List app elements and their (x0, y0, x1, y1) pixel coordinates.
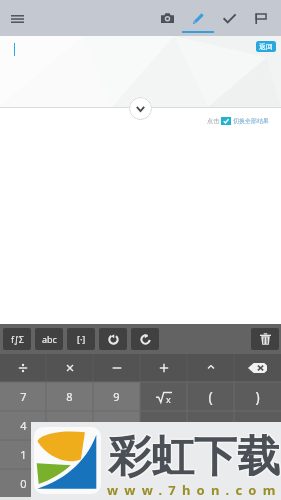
staticText: 彩虹下载 (107, 431, 279, 485)
staticText: 1/x (155, 447, 172, 462)
button[interactable] (93, 354, 140, 382)
button[interactable]: f∫Σ (3, 328, 31, 350)
staticText: abc (42, 333, 57, 345)
staticText: 0 (20, 476, 27, 491)
button[interactable]: abc (35, 328, 63, 350)
staticText: 1/2x (152, 418, 175, 433)
staticText: = (113, 476, 120, 491)
staticText: ] (256, 418, 260, 433)
button[interactable]: . (46, 469, 93, 497)
staticText: ( (208, 387, 213, 406)
button[interactable]: Done (213, 0, 245, 36)
button[interactable]: [·] (67, 328, 95, 350)
staticText: 5 (66, 418, 73, 433)
staticText: . (68, 476, 71, 491)
staticText: 彩虹下载 (109, 429, 281, 483)
button[interactable]: Camera (151, 0, 183, 36)
staticText: x (166, 393, 171, 405)
button[interactable]: 2 (46, 440, 93, 469)
button[interactable]: Toggle (221, 117, 231, 125)
staticText: x² (206, 447, 216, 462)
staticText: 彩虹下载 (108, 430, 280, 484)
button[interactable]: 1 (0, 440, 46, 469)
button[interactable]: Menu (3, 4, 31, 32)
button[interactable]: 9 (93, 382, 140, 411)
staticText: 3 (113, 447, 120, 462)
button[interactable] (187, 354, 234, 382)
button[interactable]: 4 (0, 411, 46, 440)
staticText: x³ (253, 447, 263, 462)
button[interactable]: 1/2x (140, 411, 187, 440)
staticText: ) (255, 387, 260, 406)
staticText: 2 (66, 447, 73, 462)
button[interactable]: Collapse (129, 97, 152, 120)
staticText: 返回 (259, 42, 273, 51)
button[interactable]: 5 (46, 411, 93, 440)
button[interactable]: ( (187, 382, 234, 411)
button[interactable]: 7 (0, 382, 46, 411)
button[interactable]: ] (234, 411, 281, 440)
button[interactable]: Undo (99, 328, 127, 350)
button[interactable]: x³ (234, 440, 281, 469)
button[interactable]: 返回 (256, 41, 276, 52)
staticText: 彩虹下载 (109, 431, 281, 485)
button[interactable]: x (140, 382, 187, 411)
staticText: www.7hon.com (107, 481, 281, 499)
staticText: [ (209, 418, 213, 433)
button[interactable] (140, 354, 187, 382)
button[interactable]: Flag (245, 0, 277, 36)
button[interactable]: = (93, 469, 140, 497)
staticText: 彩虹下载 (108, 431, 280, 485)
staticText: [·] (77, 333, 86, 345)
button[interactable]: 3 (93, 440, 140, 469)
staticText: 彩虹下载 (108, 429, 280, 483)
button[interactable]: 8 (46, 382, 93, 411)
staticText: 彩虹下载 (107, 430, 279, 484)
staticText: 彩虹下载 (107, 429, 279, 483)
staticText: 1 (20, 447, 27, 462)
button[interactable]: [ (187, 411, 234, 440)
other: Backspace (248, 363, 267, 373)
button[interactable]: 1/x (140, 440, 187, 469)
staticText: 6 (113, 418, 120, 433)
button[interactable]: 6 (93, 411, 140, 440)
staticText: 9 (113, 389, 120, 404)
staticText: 彩虹下载 (109, 430, 281, 484)
staticText: f∫Σ (11, 333, 24, 345)
button[interactable]: ) (234, 382, 281, 411)
button[interactable]: π (140, 469, 187, 497)
button[interactable]: Redo (131, 328, 159, 350)
button[interactable]: 0 (0, 469, 46, 497)
staticText: 4 (20, 418, 27, 433)
staticText: % (253, 476, 263, 491)
button[interactable]: Delete (251, 328, 279, 350)
button[interactable]: Backspace (234, 354, 281, 382)
button[interactable]: e (187, 469, 234, 497)
staticText: 切换全部结果 (233, 117, 269, 125)
staticText: 8 (66, 389, 73, 404)
button[interactable]: Draw (182, 0, 214, 36)
button[interactable]: % (234, 469, 281, 497)
staticText: 7 (20, 389, 27, 404)
button[interactable]: x² (187, 440, 234, 469)
staticText: e (207, 476, 214, 491)
button[interactable] (46, 354, 93, 382)
staticText: 点击 (207, 117, 219, 125)
button[interactable] (0, 354, 46, 382)
